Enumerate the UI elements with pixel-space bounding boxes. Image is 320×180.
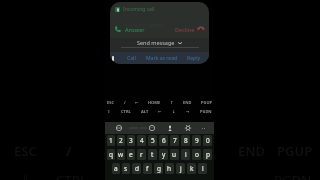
staticText: 9 <box>195 136 199 145</box>
button[interactable]: 6 <box>159 135 168 146</box>
staticText: d <box>135 164 139 173</box>
button[interactable]: Send message <box>110 38 209 47</box>
staticText: l <box>202 164 204 173</box>
staticText: ESC <box>107 100 115 105</box>
staticText: ← <box>158 109 162 114</box>
staticText: e <box>129 150 133 159</box>
staticText: Decline <box>175 26 195 33</box>
button[interactable]: 1 <box>107 135 115 146</box>
staticText: 6 <box>162 136 166 145</box>
staticText: ↓ <box>172 109 176 114</box>
staticText: 3 <box>129 136 133 145</box>
other: Decline <box>197 25 205 33</box>
button[interactable]: 5 <box>148 135 157 146</box>
button[interactable]: 9 <box>192 135 201 146</box>
button[interactable]: Mark as read <box>145 52 179 64</box>
staticText: y <box>162 150 166 159</box>
staticText: t <box>151 150 154 159</box>
staticText: o <box>195 150 199 159</box>
staticText: g <box>157 164 161 173</box>
button[interactable]: k <box>187 163 196 174</box>
staticText: PGUP <box>277 142 313 160</box>
button[interactable]: i <box>181 149 190 160</box>
button[interactable]: Search <box>115 124 123 132</box>
staticText: CTRL <box>56 171 88 180</box>
button[interactable]: s <box>122 163 130 174</box>
staticText: Incoming call <box>123 6 155 13</box>
other: Answer call <box>114 25 122 33</box>
staticText: Mark as read <box>146 55 178 61</box>
button[interactable]: 7 <box>170 135 179 146</box>
staticText: PGUP <box>201 100 212 105</box>
staticText: w <box>118 150 124 159</box>
staticText: 5 <box>151 136 155 145</box>
button[interactable]: Emoji <box>148 124 156 132</box>
button[interactable]: d <box>132 163 141 174</box>
staticText: Reply <box>187 55 201 61</box>
button[interactable]: 8 <box>181 135 190 146</box>
staticText: 1 <box>109 136 113 145</box>
button[interactable]: 3 <box>127 135 135 146</box>
button[interactable]: e <box>127 149 135 160</box>
button[interactable]: Settings <box>184 124 192 132</box>
staticText: ⇧ <box>107 109 111 114</box>
staticText: i <box>185 150 187 159</box>
button[interactable]: g <box>154 163 163 174</box>
button[interactable]: 4 <box>137 135 146 146</box>
staticText: r <box>140 150 143 159</box>
button[interactable]: q <box>107 149 115 160</box>
staticText: q <box>109 150 113 159</box>
staticText: 4 <box>140 136 144 145</box>
staticText: Send message <box>137 39 175 46</box>
button[interactable]: l <box>198 163 207 174</box>
button[interactable]: 0 <box>203 135 212 146</box>
staticText: / <box>66 142 72 160</box>
button[interactable]: Reply <box>186 52 202 64</box>
button[interactable]: y <box>159 149 168 160</box>
staticText: a <box>114 164 118 173</box>
staticText: j <box>180 164 182 173</box>
button[interactable]: Call <box>126 52 137 64</box>
staticText: PGDN <box>200 109 212 114</box>
staticText: Call <box>127 55 136 61</box>
staticText: ← <box>135 100 139 105</box>
staticText: END <box>238 142 266 160</box>
button[interactable]: t <box>148 149 157 160</box>
staticText: k <box>190 164 194 173</box>
staticText: h <box>167 164 172 173</box>
button[interactable]: More options <box>199 124 207 132</box>
staticText: Answer <box>125 26 145 33</box>
staticText: 0 <box>206 136 210 145</box>
staticText: CTRL <box>121 109 131 114</box>
staticText: END <box>183 100 192 105</box>
staticText: s <box>124 164 128 173</box>
staticText: 8 <box>184 136 188 145</box>
button[interactable]: f <box>143 163 152 174</box>
staticText: ↑ <box>170 100 174 105</box>
button[interactable]: r <box>137 149 146 160</box>
staticText: u <box>172 150 177 159</box>
staticText: p <box>206 150 210 159</box>
button[interactable]: o <box>192 149 201 160</box>
staticText: HOME <box>148 100 161 105</box>
button[interactable]: Voice input <box>166 124 174 132</box>
button[interactable]: Decline <box>175 26 195 33</box>
button[interactable]: a <box>112 163 120 174</box>
staticText: / <box>124 100 126 105</box>
button[interactable]: j <box>176 163 185 174</box>
staticText: PGDN <box>274 171 312 180</box>
staticText: f <box>146 164 149 173</box>
button[interactable]: 2 <box>117 135 125 146</box>
staticText: ⇧ <box>20 171 31 180</box>
staticText: → <box>186 109 190 114</box>
staticText: ALT <box>141 109 149 114</box>
button[interactable]: p <box>203 149 212 160</box>
staticText: 2 <box>119 136 123 145</box>
button[interactable]: Answer <box>125 26 145 33</box>
staticText: 7 <box>173 136 177 145</box>
button[interactable]: h <box>165 163 174 174</box>
button[interactable]: w <box>117 149 125 160</box>
button[interactable]: u <box>170 149 179 160</box>
staticText: ESC <box>14 142 37 160</box>
